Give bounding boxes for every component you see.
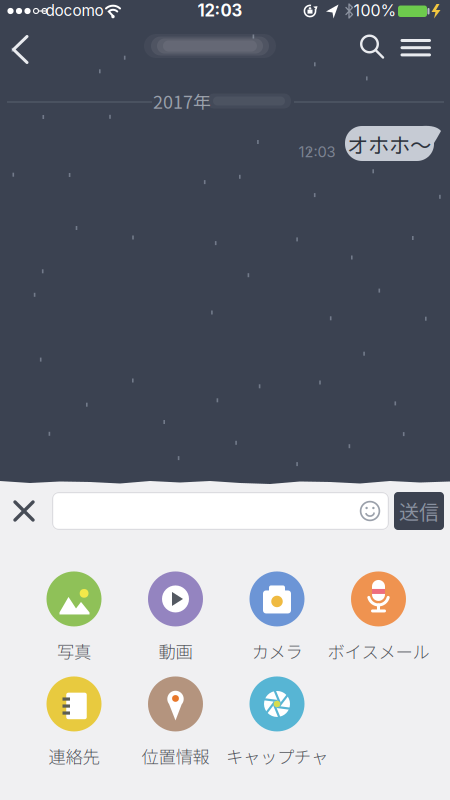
button[interactable]: Close (11, 498, 37, 524)
button[interactable]: カメラ (222, 568, 332, 666)
button[interactable]: 写真 (19, 568, 129, 666)
button[interactable]: Message field (52, 492, 389, 530)
staticText: 写真 (57, 638, 91, 664)
button[interactable]: Search (352, 28, 390, 66)
button[interactable]: Menu (400, 37, 432, 61)
button[interactable]: 連絡先 (19, 673, 129, 771)
button[interactable]: 動画 (120, 568, 230, 666)
staticText: 位置情報 (141, 743, 209, 769)
staticText: 2017年 (153, 88, 211, 114)
staticText: カメラ (251, 638, 302, 664)
button[interactable]: キャップチャ (222, 673, 332, 771)
staticText: docomo (45, 1, 103, 20)
staticText: 連絡先 (48, 743, 99, 769)
button[interactable]: Send (394, 492, 444, 530)
staticText: 100% (353, 1, 396, 20)
staticText: オホホ〜 (347, 129, 431, 159)
button[interactable]: Emoji (359, 500, 381, 522)
button[interactable]: 位置情報 (120, 673, 230, 771)
button[interactable]: ボイスメール (323, 568, 433, 666)
staticText: キャップチャ (226, 743, 328, 769)
staticText: 12:03 (197, 0, 242, 21)
button[interactable]: Back (4, 31, 38, 67)
staticText: 動画 (158, 638, 192, 664)
staticText: ボイスメール (327, 638, 429, 664)
staticText: 送信 (399, 496, 439, 525)
staticText: 12:03 (298, 143, 335, 161)
